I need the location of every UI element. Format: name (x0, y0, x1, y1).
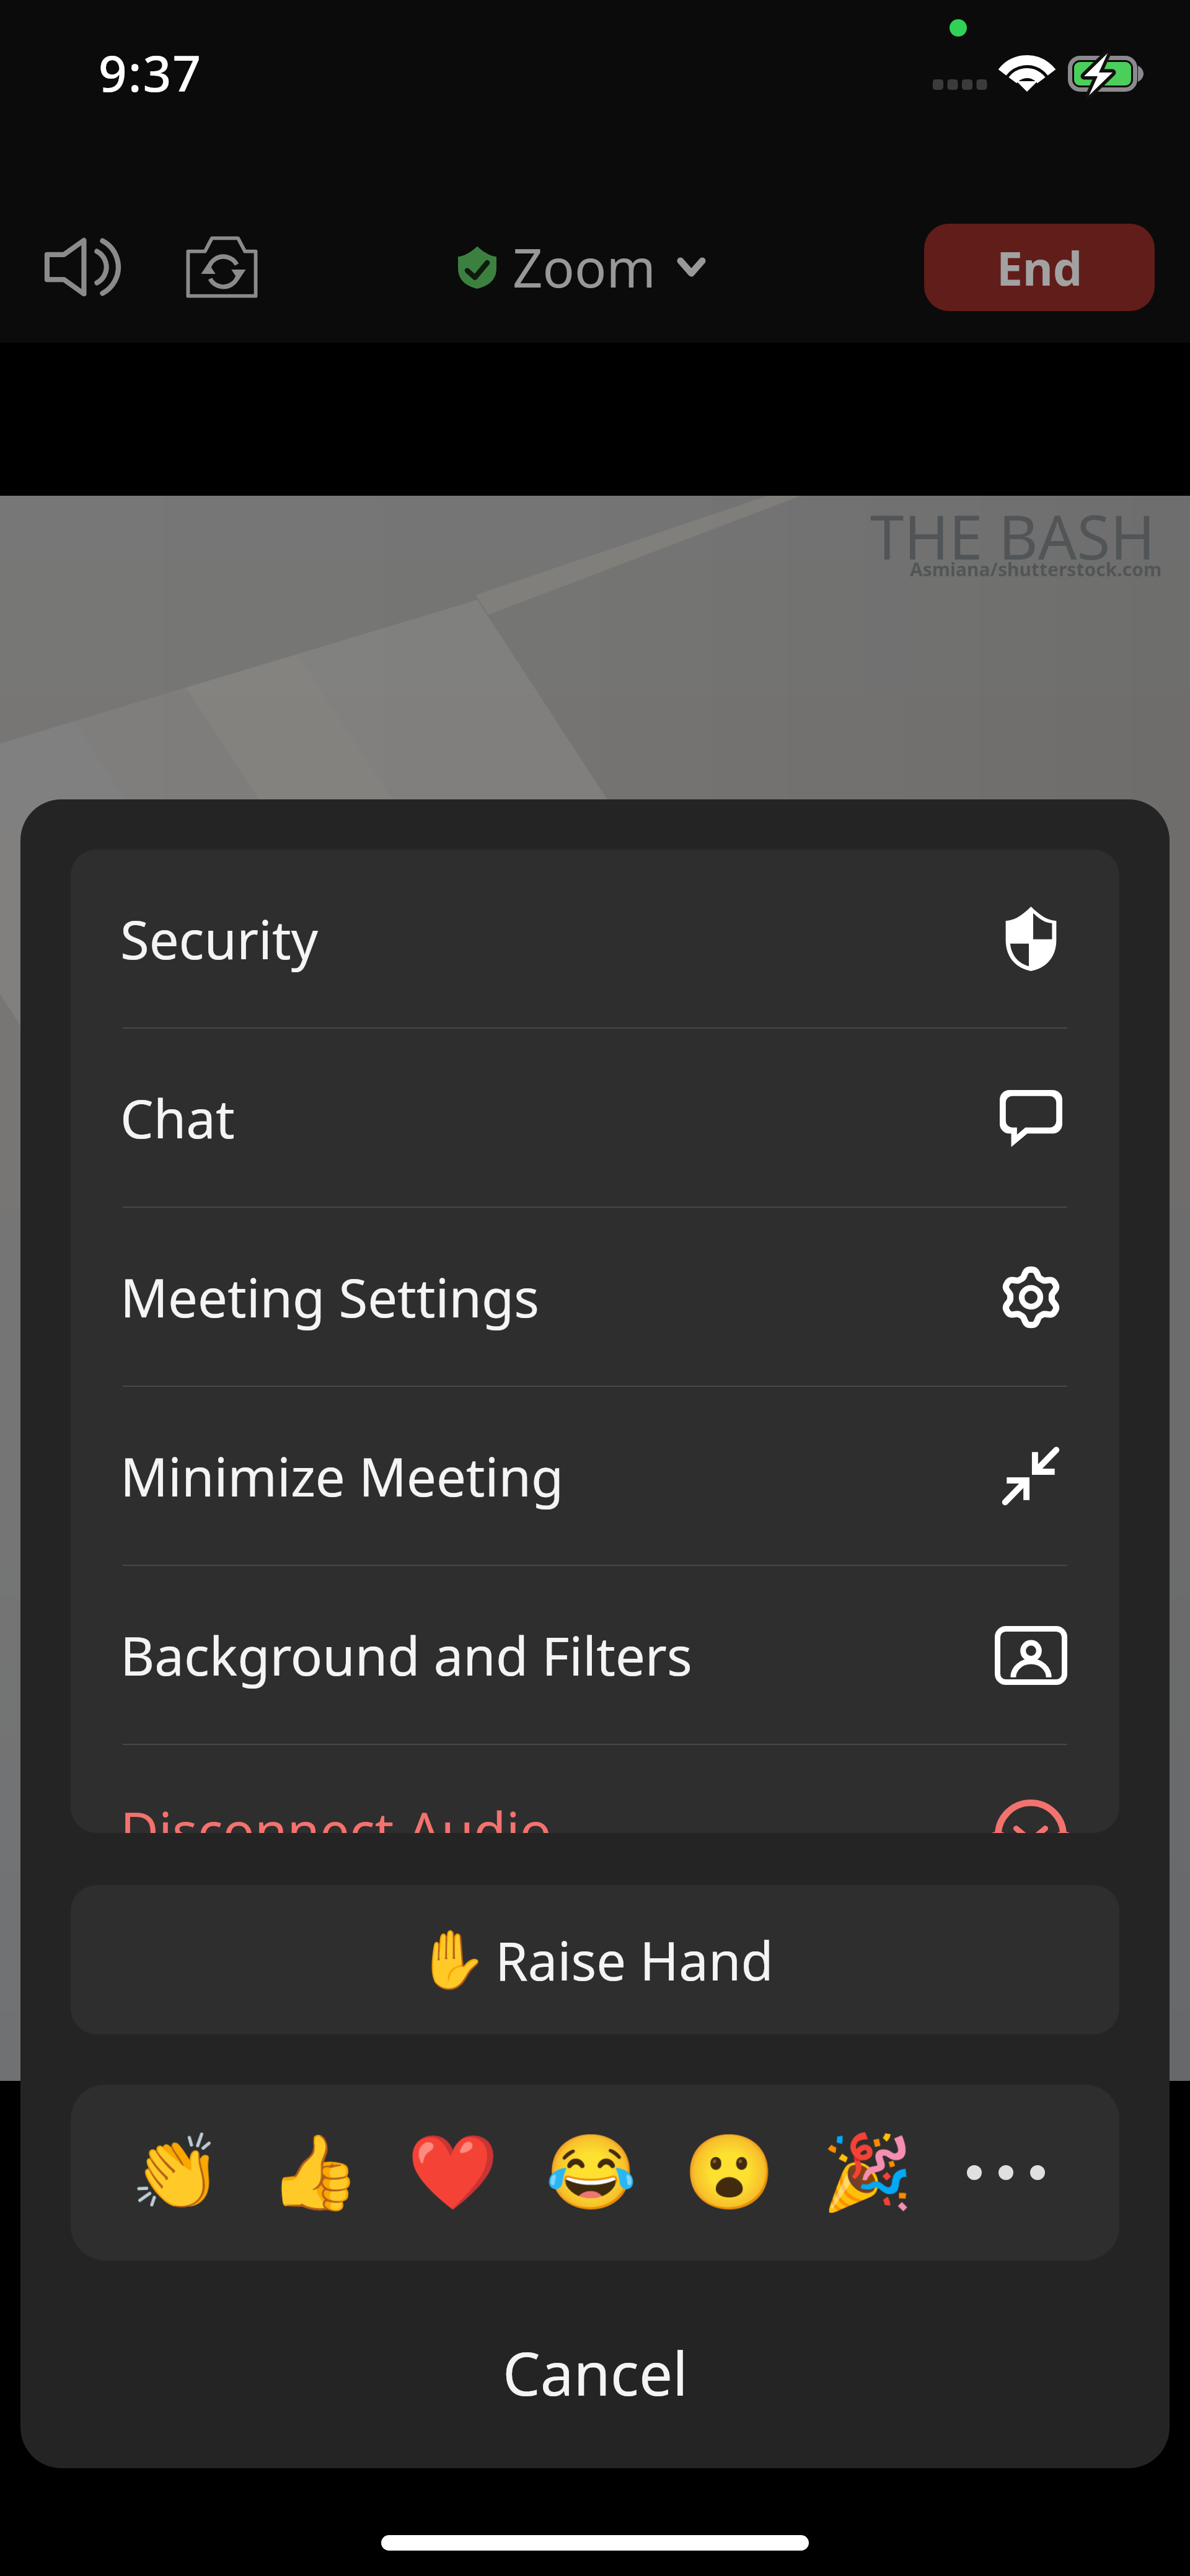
staticText: Meeting Settings (120, 1261, 539, 1333)
button[interactable]: Thumbs up (262, 2120, 368, 2225)
button[interactable]: Celebrate (815, 2120, 920, 2225)
button[interactable]: Switch camera (172, 218, 271, 317)
button[interactable]: Chat (71, 1029, 1119, 1207)
button[interactable]: More reactions (953, 2120, 1059, 2225)
button[interactable]: Laughing (539, 2120, 644, 2225)
staticText: 9:37 (99, 38, 203, 106)
button[interactable]: Minimize Meeting (71, 1387, 1119, 1565)
button[interactable]: Meeting Settings (71, 1208, 1119, 1386)
staticText: 👍 (269, 2130, 361, 2216)
staticText: End (997, 236, 1083, 299)
staticText: Asmiana/shutterstock.com (910, 556, 1162, 582)
button[interactable]: Disconnect Audio (71, 1745, 1119, 1833)
button[interactable]: Clap (124, 2120, 229, 2225)
button[interactable]: Cancel (20, 2261, 1170, 2468)
staticText: Background and Filters (120, 1619, 692, 1691)
staticText: Zoom (513, 231, 656, 303)
button[interactable]: Surprised (677, 2120, 782, 2225)
staticText: 😂 (545, 2130, 637, 2216)
staticText: THE BASH (870, 495, 1155, 577)
button[interactable]: Security (71, 850, 1119, 1027)
staticText: Chat (120, 1082, 235, 1154)
staticText: ❤️ (407, 2130, 499, 2216)
button[interactable]: Background and Filters (71, 1566, 1119, 1744)
staticText: 👏 (131, 2130, 223, 2216)
button[interactable]: Speaker (29, 216, 130, 318)
staticText: Disconnect Audio (120, 1795, 552, 1833)
staticText: Security (120, 903, 319, 975)
button[interactable]: Heart (400, 2120, 506, 2225)
staticText: Raise Hand (495, 1924, 773, 1996)
staticText: ✋ (416, 1927, 488, 1994)
staticText: Cancel (503, 2332, 688, 2413)
button[interactable]: End (924, 224, 1155, 311)
button[interactable]: ✋ (71, 1885, 1119, 2034)
button[interactable]: Zoom (458, 231, 706, 303)
staticText: 🎉 (822, 2130, 914, 2216)
staticText: 😮 (684, 2130, 775, 2216)
staticText: Minimize Meeting (120, 1440, 564, 1512)
